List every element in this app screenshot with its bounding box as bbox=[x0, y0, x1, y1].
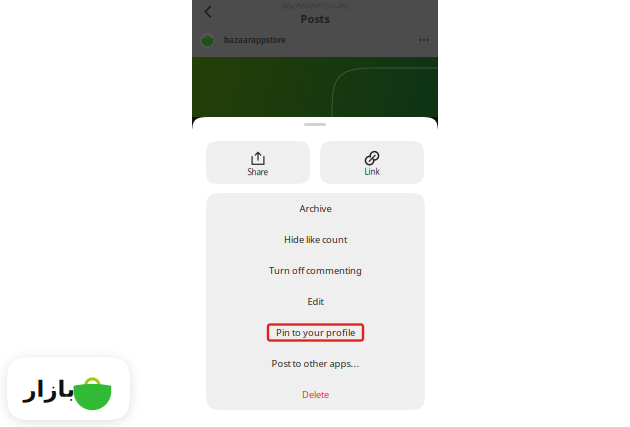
button[interactable]: Edit bbox=[206, 286, 425, 317]
staticText: Hide like count bbox=[284, 233, 347, 246]
button[interactable]: Pin to your profile bbox=[206, 317, 425, 348]
staticText: Edit bbox=[307, 295, 323, 308]
button[interactable]: Hide like count bbox=[206, 224, 425, 255]
staticText: بازار bbox=[23, 376, 75, 402]
button[interactable]: Back bbox=[198, 0, 218, 24]
staticText: Pin to your profile bbox=[276, 326, 355, 339]
staticText: Delete bbox=[302, 388, 329, 401]
button[interactable]: Post to other apps... bbox=[206, 348, 425, 379]
button[interactable]: Turn off commenting bbox=[206, 255, 425, 286]
staticText: Post to other apps... bbox=[271, 357, 359, 370]
staticText: Archive bbox=[299, 202, 331, 215]
staticText: BAZAARAPPSTORE bbox=[281, 0, 349, 11]
staticText: Turn off commenting bbox=[269, 264, 362, 277]
button[interactable]: Archive bbox=[206, 193, 425, 224]
staticText: Share bbox=[247, 167, 268, 177]
button[interactable]: More options bbox=[418, 37, 430, 43]
button[interactable]: Link bbox=[320, 141, 424, 184]
staticText: bazaarappstore bbox=[224, 35, 286, 45]
button[interactable]: Delete bbox=[206, 379, 425, 410]
staticText: Posts bbox=[300, 12, 329, 26]
button[interactable]: Profile picture bbox=[200, 32, 215, 47]
staticText: Link bbox=[364, 166, 379, 177]
button[interactable]: Share bbox=[206, 141, 310, 184]
